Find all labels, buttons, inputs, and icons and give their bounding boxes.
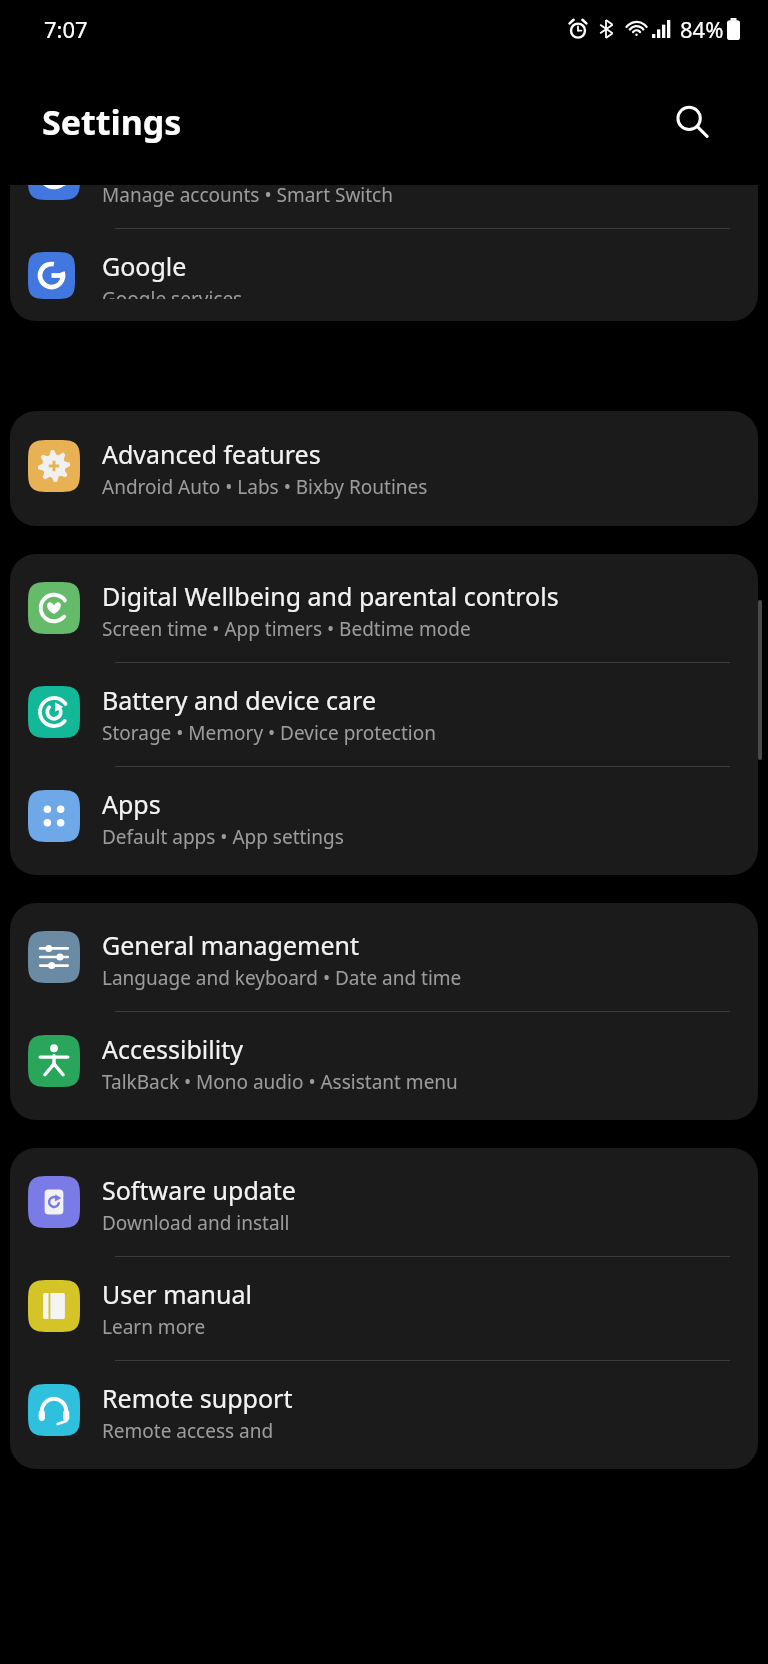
staticText: Remote support bbox=[102, 1381, 293, 1415]
staticText: Accessibility bbox=[102, 1032, 243, 1066]
staticText: Manage accounts • Smart Switch bbox=[102, 185, 393, 208]
button[interactable]: Search bbox=[668, 98, 716, 146]
staticText: TalkBack • Mono audio • Assistant menu bbox=[102, 1069, 458, 1095]
staticText: 7:07 bbox=[44, 14, 88, 44]
staticText: Android Auto • Labs • Bixby Routines bbox=[102, 474, 428, 500]
staticText: Advanced features bbox=[102, 437, 321, 471]
button[interactable]: User manual bbox=[10, 1257, 758, 1360]
staticText: Screen time • App timers • Bedtime mode bbox=[102, 616, 471, 642]
staticText: Digital Wellbeing and parental controls bbox=[102, 579, 559, 613]
staticText: Default apps • App settings bbox=[102, 824, 344, 850]
button[interactable]: Remote support bbox=[10, 1361, 758, 1469]
button[interactable]: Digital Wellbeing and parental controls bbox=[10, 554, 758, 662]
staticText: General management bbox=[102, 928, 359, 962]
button[interactable]: Battery and device care bbox=[10, 663, 758, 766]
staticText: Software update bbox=[102, 1173, 296, 1207]
staticText: Learn more bbox=[102, 1314, 206, 1340]
button[interactable]: Google bbox=[10, 229, 758, 321]
staticText: 84% bbox=[680, 14, 724, 44]
staticText: Google bbox=[102, 249, 187, 283]
staticText: Google services bbox=[102, 286, 243, 299]
staticText: Storage • Memory • Device protection bbox=[102, 720, 436, 746]
button[interactable]: Accessibility bbox=[10, 1012, 758, 1120]
button[interactable]: General management bbox=[10, 903, 758, 1011]
button[interactable]: Advanced features bbox=[10, 411, 758, 526]
staticText: Apps bbox=[102, 787, 161, 821]
button[interactable]: Software update bbox=[10, 1148, 758, 1256]
staticText: Download and install bbox=[102, 1210, 290, 1236]
staticText: Settings bbox=[42, 99, 182, 145]
staticText: Remote access and bbox=[102, 1418, 274, 1444]
staticText: Language and keyboard • Date and time bbox=[102, 965, 462, 991]
button[interactable]: Apps bbox=[10, 767, 758, 875]
staticText: Battery and device care bbox=[102, 683, 377, 717]
button[interactable]: Accounts and backup bbox=[10, 185, 758, 228]
staticText: User manual bbox=[102, 1277, 252, 1311]
